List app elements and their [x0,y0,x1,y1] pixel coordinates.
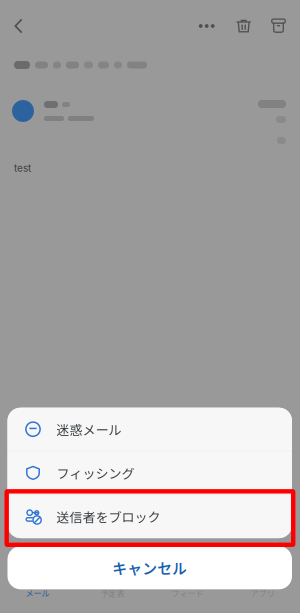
staticText: アプリ [250,587,274,599]
button[interactable]: Back [3,0,33,52]
button[interactable]: キャンセル [7,546,292,589]
staticText: メール [25,587,49,599]
button[interactable]: 送信者をブロック [7,495,292,538]
button[interactable]: フィード [150,586,225,609]
staticText: test [14,162,31,174]
button[interactable]: Archive [264,0,293,52]
button[interactable]: More options [190,0,223,52]
button[interactable]: 迷惑メール [7,408,292,451]
staticText: キャンセル [112,557,187,578]
staticText: 迷惑メール [56,420,121,439]
staticText: 予定表 [100,587,124,599]
button[interactable]: アプリ [225,586,300,609]
button[interactable]: フィッシング [7,451,292,494]
staticText: フィード [171,587,203,599]
button[interactable]: メール [0,586,75,609]
staticText: フィッシング [56,463,134,482]
staticText: 送信者をブロック [56,507,160,526]
button[interactable]: Delete [223,0,264,52]
button[interactable]: 予定表 [75,586,150,609]
